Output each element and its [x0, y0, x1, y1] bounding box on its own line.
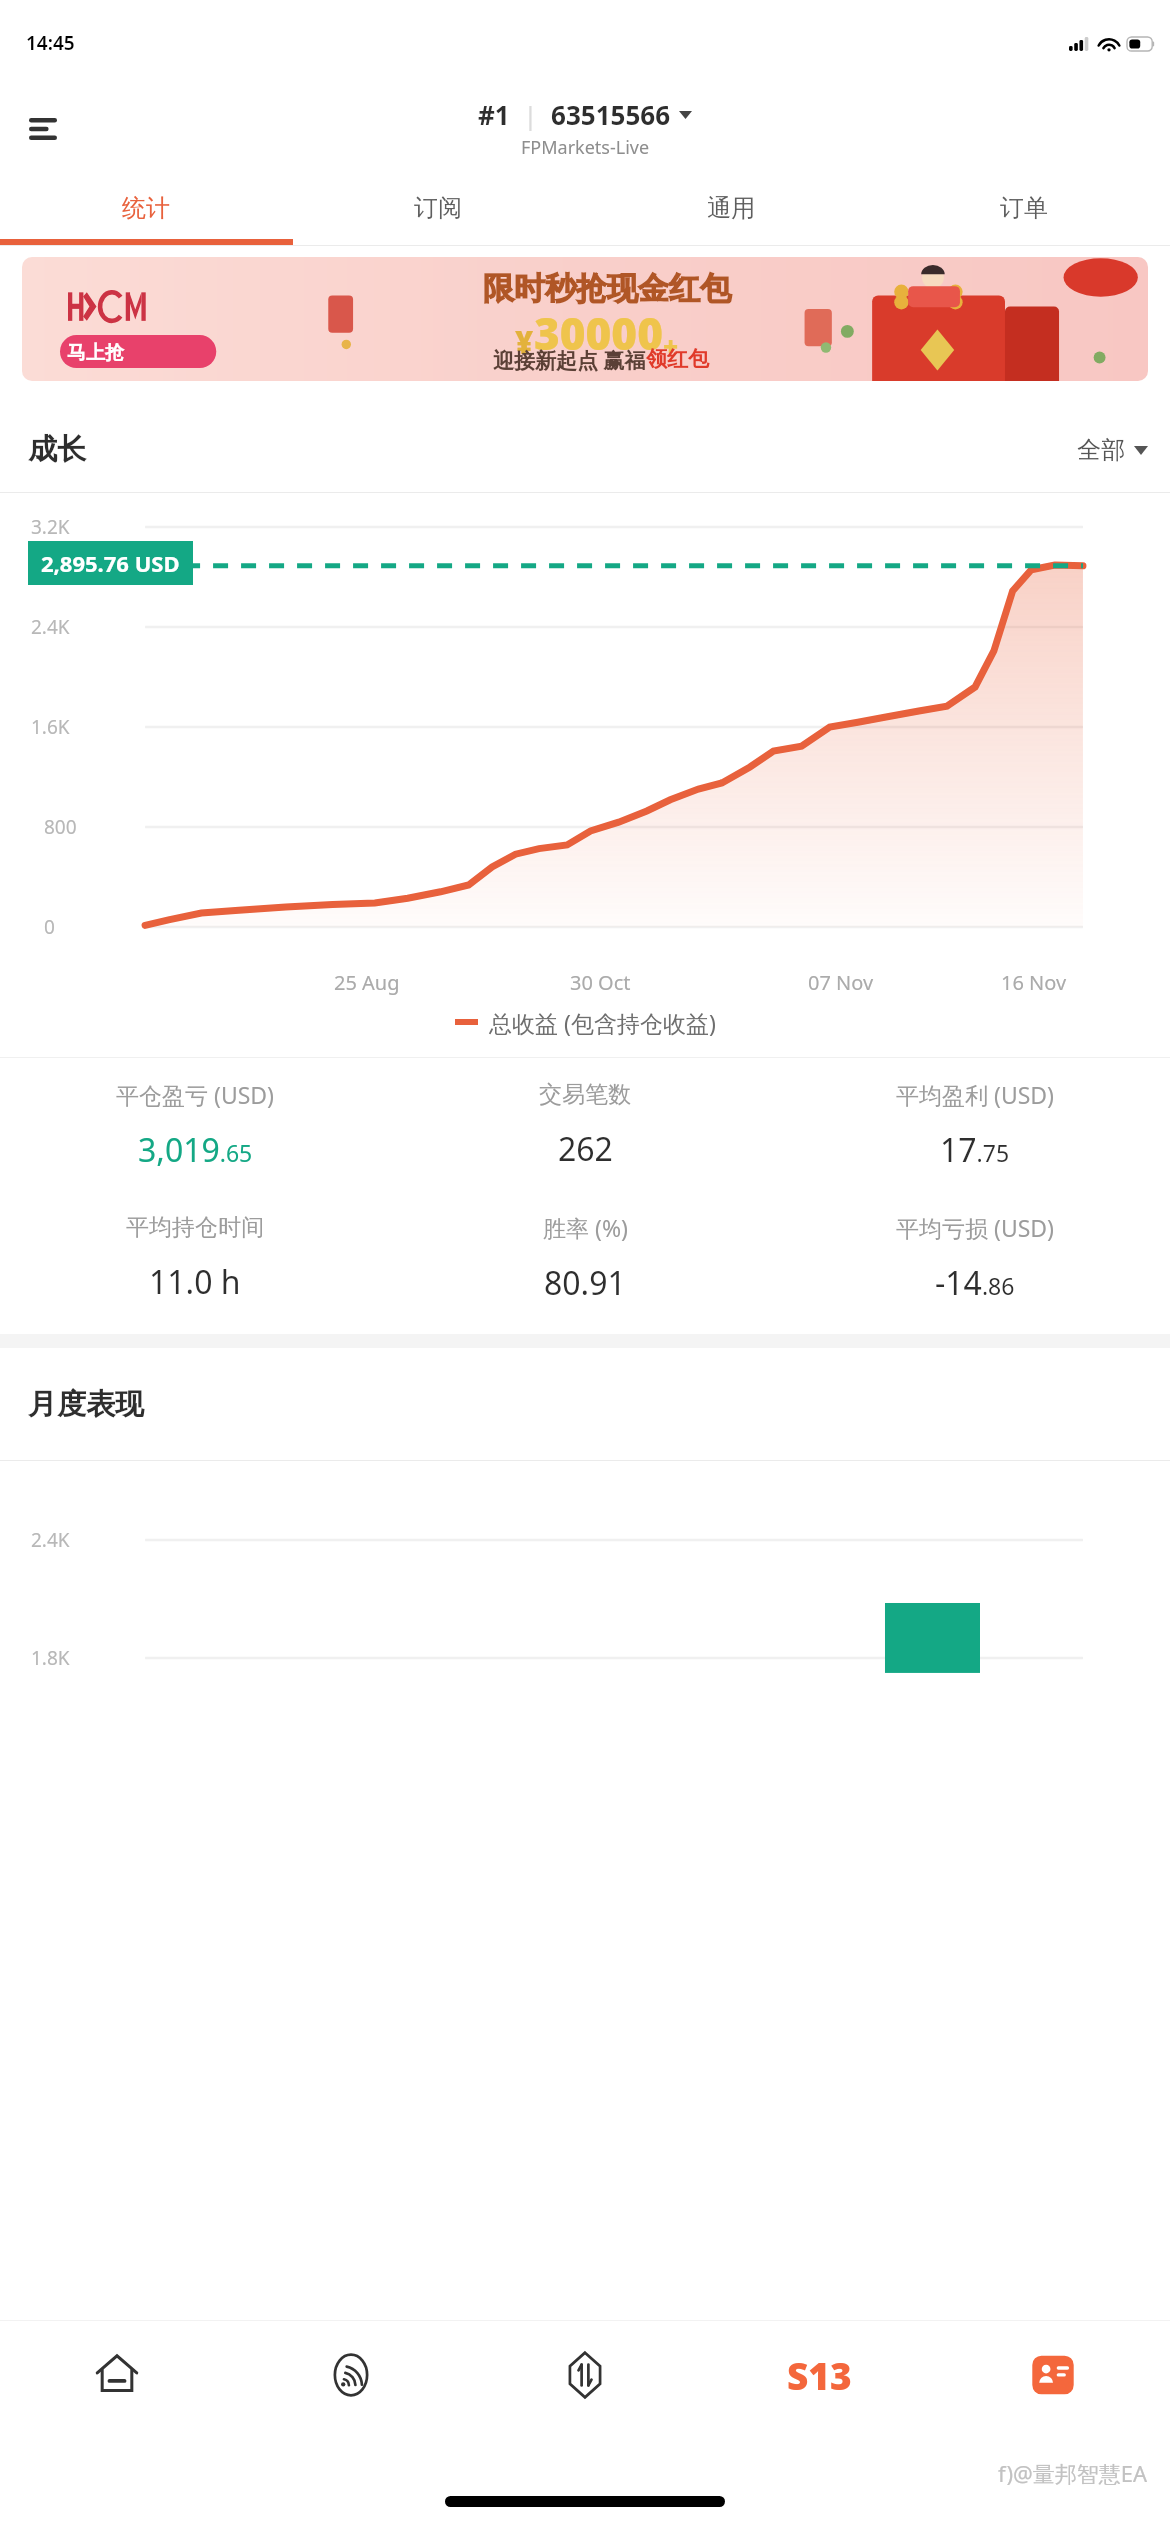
staticText: 800 [44, 814, 77, 840]
staticText: 迎接新起点 赢福 [493, 346, 646, 375]
staticText: 14:45 [26, 30, 75, 56]
button[interactable]: #1 | 63515566 [478, 97, 692, 160]
button[interactable]: 通用 [584, 177, 877, 239]
button[interactable]: 订单 [877, 177, 1170, 239]
button[interactable]: Signals [234, 2320, 468, 2450]
button[interactable]: 限时秒抢现金红包 [22, 257, 1148, 381]
staticText: 80.91 [544, 1261, 626, 1305]
staticText: 2.4K [31, 1527, 70, 1553]
staticText: 平均持仓时间 [126, 1213, 264, 1242]
button[interactable]: Account [936, 2320, 1170, 2450]
staticText: S13 [787, 2350, 852, 2400]
staticText: 胜率 (%) [543, 1212, 628, 1243]
staticText: f)@量邦智慧EA [998, 2458, 1148, 2488]
staticText: -14.86 [935, 1261, 1015, 1305]
staticText: 月度表现 [28, 1386, 144, 1423]
staticText: 平均盈利 (USD) [896, 1079, 1055, 1110]
button[interactable]: Menu [14, 100, 72, 158]
button[interactable]: 订阅 [292, 177, 584, 239]
staticText: 3.2K [31, 514, 70, 540]
button[interactable]: 统计 [0, 177, 292, 239]
staticText: 0 [44, 914, 55, 940]
staticText: 1.8K [31, 1645, 70, 1671]
staticText: 11.0 h [149, 1260, 241, 1304]
staticText: 交易笔数 [539, 1080, 631, 1109]
staticText: 1.6K [31, 714, 70, 740]
button[interactable]: 全部 [1077, 435, 1148, 465]
button[interactable]: Home [0, 2320, 234, 2450]
staticText: 成长 [28, 431, 86, 468]
staticText: ¥ [515, 321, 534, 363]
button[interactable]: Trade [468, 2320, 702, 2450]
staticText: FPMarkets-Live [521, 135, 650, 160]
staticText: #1 | 63515566 [478, 97, 671, 132]
staticText: 16 Nov [1001, 969, 1067, 996]
staticText: 总收益 (包含持仓收益) [489, 1007, 716, 1038]
staticText: + [663, 328, 679, 363]
staticText: 统计 [122, 193, 170, 223]
staticText: 262 [558, 1127, 613, 1171]
staticText: 平均亏损 (USD) [896, 1212, 1055, 1243]
staticText: 30000 [534, 303, 663, 363]
staticText: 25 Aug [334, 969, 400, 996]
staticText: 2.4K [31, 614, 70, 640]
button[interactable]: 马上抢 [60, 336, 130, 369]
staticText: 3,019.65 [138, 1128, 253, 1172]
staticText: 全部 [1077, 435, 1125, 465]
staticText: 订阅 [414, 193, 462, 223]
staticText: 订单 [1000, 193, 1048, 223]
staticText: 通用 [707, 193, 755, 223]
staticText: 平仓盈亏 (USD) [116, 1079, 275, 1110]
staticText: 07 Nov [808, 969, 874, 996]
staticText: 领红包 [646, 346, 709, 372]
staticText: 马上抢 [67, 341, 124, 365]
staticText: 2,895.76 USD [41, 548, 180, 578]
staticText: 限时秒抢现金红包 [483, 269, 731, 308]
staticText: 30 Oct [570, 969, 631, 996]
staticText: 17.75 [940, 1128, 1010, 1172]
button[interactable]: S13 [702, 2320, 936, 2450]
